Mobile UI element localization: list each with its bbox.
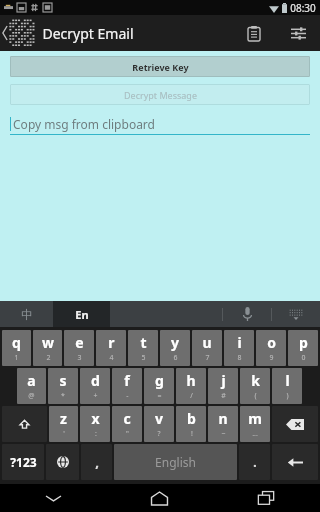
button[interactable]: j <box>208 368 238 404</box>
staticText: p <box>299 333 308 352</box>
staticText: n <box>218 409 228 428</box>
staticText: w <box>42 333 54 352</box>
button[interactable]: y <box>160 330 190 366</box>
staticText: / <box>190 391 193 401</box>
button[interactable]: . <box>239 444 270 480</box>
button[interactable]: Decrypt Message <box>10 84 310 105</box>
button[interactable]: p <box>288 330 318 366</box>
button[interactable]: m <box>240 406 270 442</box>
staticText: a <box>27 371 36 390</box>
button[interactable]: h <box>176 368 206 404</box>
staticText: b <box>187 409 196 428</box>
staticText: : <box>95 429 97 439</box>
staticText: 6 <box>173 353 178 363</box>
staticText: @ <box>28 391 35 401</box>
staticText: s <box>59 371 67 390</box>
button[interactable]: i <box>224 330 254 366</box>
button[interactable]: Hide keyboard <box>0 484 106 512</box>
staticText: + <box>93 391 98 401</box>
staticText: ' <box>63 429 65 439</box>
button[interactable]: Decrypt Email <box>0 19 134 47</box>
button[interactable]: En <box>53 301 110 327</box>
staticText: j <box>221 371 226 390</box>
staticText: ... <box>252 429 258 439</box>
button[interactable]: Voice input <box>223 301 271 327</box>
button[interactable]: n <box>208 406 238 442</box>
staticText: q <box>12 333 21 352</box>
button[interactable]: x <box>80 406 110 442</box>
staticText: * <box>61 391 65 401</box>
staticText: t <box>140 333 147 352</box>
button[interactable]: e <box>64 330 94 366</box>
button[interactable]: Home <box>106 484 213 512</box>
staticText: Copy msg from clipboard <box>13 116 155 132</box>
button[interactable]: t <box>128 330 158 366</box>
staticText: 2 <box>46 353 51 363</box>
button[interactable]: a <box>17 368 46 404</box>
staticText: , <box>95 453 99 471</box>
button[interactable]: w <box>33 330 62 366</box>
button[interactable]: f <box>112 368 142 404</box>
button[interactable]: ?123 <box>2 444 44 480</box>
staticText: 4 <box>109 353 114 363</box>
button[interactable]: , <box>81 444 112 480</box>
button[interactable]: Paste from clipboard <box>232 15 276 51</box>
staticText: 0 <box>301 353 306 363</box>
staticText: 中 <box>21 307 33 322</box>
button[interactable]: d <box>80 368 110 404</box>
button[interactable]: Enter <box>272 444 318 480</box>
staticText: e <box>75 333 84 352</box>
staticText: f <box>124 371 130 390</box>
staticText: o <box>267 333 276 352</box>
staticText: ! <box>191 429 193 439</box>
button[interactable]: o <box>256 330 286 366</box>
staticText: . <box>253 454 257 470</box>
staticText: g <box>155 371 164 390</box>
staticText: 9 <box>269 353 274 363</box>
staticText: Decrypt Email <box>42 24 134 43</box>
button[interactable]: u <box>192 330 222 366</box>
staticText: l <box>285 371 290 390</box>
staticText: = <box>157 391 162 401</box>
button[interactable]: English <box>114 444 237 480</box>
staticText: 1 <box>14 353 19 363</box>
button[interactable]: v <box>144 406 174 442</box>
staticText: 08:30 <box>290 1 316 15</box>
button[interactable]: Retrieve Key <box>10 56 310 77</box>
button[interactable]: Hide keyboard <box>272 301 320 327</box>
staticText: m <box>248 409 262 428</box>
button[interactable]: k <box>240 368 270 404</box>
button[interactable]: Shift <box>2 406 47 442</box>
staticText: z <box>60 409 67 428</box>
staticText: ? <box>157 429 161 439</box>
button[interactable]: r <box>96 330 126 366</box>
staticText: d <box>91 371 100 390</box>
staticText: ?123 <box>10 454 37 470</box>
button[interactable]: Recent apps <box>213 484 320 512</box>
button[interactable]: c <box>112 406 142 442</box>
staticText: En <box>75 307 89 322</box>
staticText: r <box>108 333 115 352</box>
staticText: i <box>237 333 242 352</box>
staticText: English <box>155 454 196 470</box>
button[interactable]: Backspace <box>272 406 318 442</box>
button[interactable]: q <box>2 330 31 366</box>
staticText: ) <box>286 391 289 401</box>
button[interactable]: g <box>144 368 174 404</box>
button[interactable]: s <box>48 368 78 404</box>
staticText: Decrypt Message <box>124 89 197 101</box>
button[interactable]: b <box>176 406 206 442</box>
staticText: 7 <box>205 353 210 363</box>
staticText: k <box>251 371 260 390</box>
staticText: ~ <box>221 429 226 439</box>
button[interactable]: Copy msg from clipboard <box>10 113 310 135</box>
button[interactable]: l <box>272 368 302 404</box>
staticText: u <box>202 333 212 352</box>
staticText: h <box>186 371 196 390</box>
button[interactable]: Change language <box>46 444 79 480</box>
staticText: - <box>126 391 129 401</box>
button[interactable]: z <box>49 406 78 442</box>
button[interactable]: Settings <box>276 15 320 51</box>
staticText: # <box>221 391 226 401</box>
button[interactable]: Chinese input <box>0 301 53 327</box>
